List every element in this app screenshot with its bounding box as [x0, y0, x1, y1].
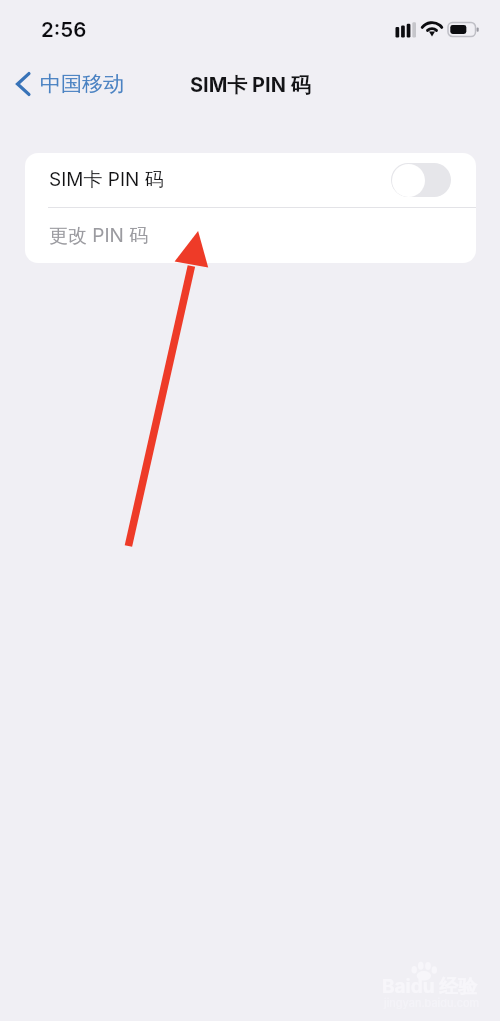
staticText: 2:56 [41, 17, 87, 42]
staticText: 中国移动 [40, 71, 124, 97]
staticText: SIM卡 PIN 码 [190, 73, 311, 98]
button[interactable]: 更改 PIN 码 [25, 208, 476, 263]
staticText: SIM卡 PIN 码 [49, 168, 164, 192]
staticText: 更改 PIN 码 [49, 224, 149, 248]
staticText: Baidu 经验 [382, 975, 478, 999]
button[interactable]: 中国移动 [10, 66, 129, 102]
button[interactable]: SIM PIN switch, off [391, 163, 451, 197]
button[interactable]: SIM卡 PIN 码 [25, 153, 476, 207]
